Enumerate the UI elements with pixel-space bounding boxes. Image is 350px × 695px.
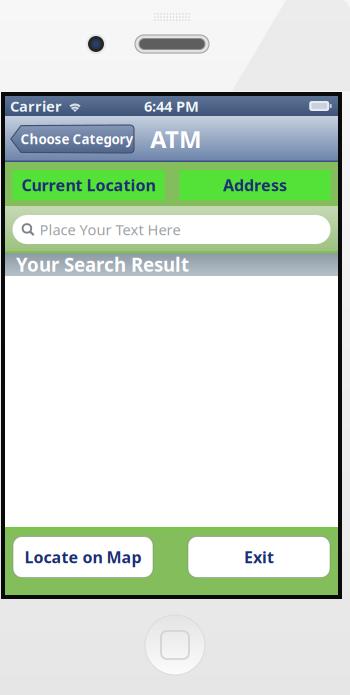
staticText: Locate on Map (24, 546, 141, 568)
staticText: ATM (150, 123, 202, 155)
staticText: 6:44 PM (144, 96, 199, 116)
staticText: Your Search Result (16, 252, 189, 277)
button[interactable]: Choose Category (10, 125, 134, 153)
button[interactable]: Address (179, 170, 330, 200)
staticText: Current Location (21, 174, 155, 196)
button[interactable]: Locate on Map (13, 536, 153, 577)
button[interactable]: Exit (188, 536, 330, 577)
staticText: Carrier (10, 96, 62, 116)
staticText: Place Your Text Here (39, 220, 180, 239)
button[interactable]: Current Location (12, 170, 164, 200)
staticText: Choose Category (20, 130, 133, 148)
staticText: Address (223, 174, 287, 196)
staticText: Exit (244, 546, 274, 568)
